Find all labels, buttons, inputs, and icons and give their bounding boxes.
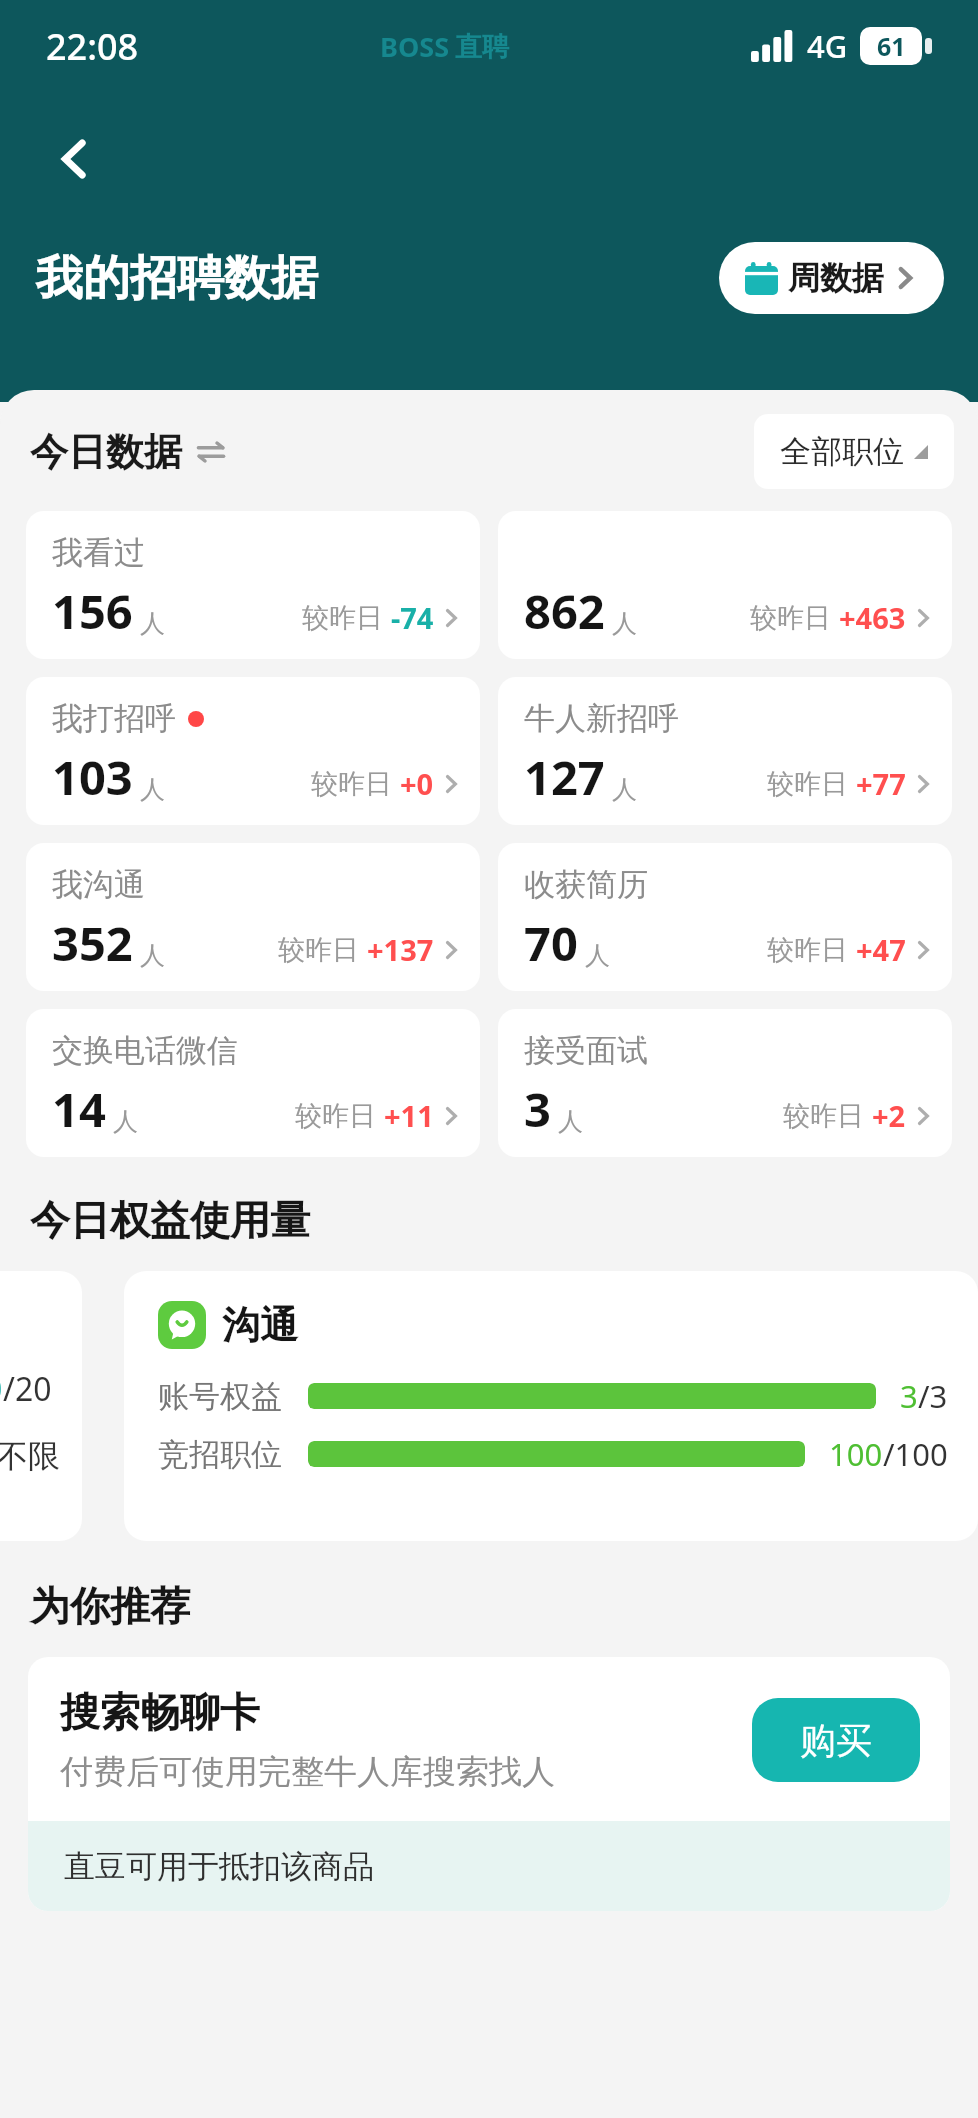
button[interactable]: 0 (0, 1271, 82, 1541)
staticText: 较昨日 (783, 1099, 864, 1133)
staticText: 较昨日 (302, 601, 383, 635)
button[interactable]: 周数据 (719, 242, 944, 314)
button[interactable]: 我看过 (26, 511, 480, 659)
staticText: 4G (807, 25, 848, 67)
button[interactable]: 862 (498, 511, 952, 659)
staticText: +11 (384, 1096, 434, 1135)
staticText: 61 (877, 29, 906, 63)
staticText: +2 (872, 1096, 906, 1135)
staticText: 竞招职位 (158, 1435, 282, 1474)
staticText: 我的招聘数据 (36, 249, 318, 308)
staticText: 14 (52, 1077, 106, 1141)
button[interactable]: 交换电话微信 (26, 1009, 480, 1157)
staticText: 862 (524, 579, 605, 643)
staticText: 3 (524, 1077, 551, 1141)
button[interactable]: 我打招呼 (26, 677, 480, 825)
button[interactable]: 接受面试 (498, 1009, 952, 1157)
staticText: 103 (52, 745, 133, 809)
button[interactable]: 牛人新招呼 (498, 677, 952, 825)
staticText: +137 (367, 930, 434, 969)
button[interactable]: 沟通 (124, 1271, 978, 1541)
staticText: 人 (612, 608, 637, 639)
staticText: 购买 (800, 1718, 872, 1763)
staticText: 人 (140, 608, 165, 639)
staticText: 0 (0, 1367, 3, 1411)
staticText: 牛人新招呼 (524, 699, 679, 738)
staticText: 人 (612, 774, 637, 805)
staticText: 人 (585, 940, 610, 971)
button[interactable]: 购买 (752, 1698, 920, 1782)
staticText: 交换电话微信 (52, 1031, 238, 1070)
staticText: /20 (3, 1367, 52, 1411)
staticText: 直豆可用于抵扣该商品 (64, 1847, 374, 1886)
staticText: 付费后可使用完整牛人库搜索找人 (60, 1751, 555, 1793)
staticText: 账号权益 (158, 1377, 282, 1416)
staticText: 127 (524, 745, 605, 809)
button[interactable]: Back (44, 128, 106, 190)
staticText: 我看过 (52, 533, 145, 572)
staticText: 人 (558, 1106, 583, 1137)
staticText: 人 (140, 940, 165, 971)
staticText: 352 (52, 911, 133, 975)
staticText: 直聘 (455, 30, 509, 64)
staticText: /3 (918, 1375, 948, 1417)
staticText: 较昨日 (767, 767, 848, 801)
staticText: 156 (52, 579, 133, 643)
staticText: +77 (856, 764, 906, 803)
staticText: 3 (900, 1375, 918, 1417)
button[interactable]: 我沟通 (26, 843, 480, 991)
button[interactable]: 收获简历 (498, 843, 952, 991)
staticText: 较昨日 (767, 933, 848, 967)
button[interactable]: 全部职位 (754, 414, 954, 489)
staticText: +47 (856, 930, 906, 969)
staticText: +463 (839, 598, 906, 637)
staticText: 今日数据 (30, 428, 182, 476)
staticText: 较昨日 (750, 601, 831, 635)
staticText: BOSS (380, 28, 450, 65)
button[interactable]: 今日数据 (30, 428, 226, 476)
staticText: 今日权益使用量 (30, 1195, 310, 1245)
staticText: 接受面试 (524, 1031, 648, 1070)
staticText: 周数据 (788, 258, 884, 298)
staticText: 我沟通 (52, 865, 145, 904)
staticText: 较昨日 (311, 767, 392, 801)
staticText: 较昨日 (295, 1099, 376, 1133)
staticText: 22:08 (46, 22, 139, 71)
staticText: 较昨日 (278, 933, 359, 967)
staticText: /不限 (0, 1433, 60, 1477)
staticText: 人 (140, 774, 165, 805)
staticText: +0 (400, 764, 434, 803)
staticText: 为你推荐 (30, 1581, 190, 1631)
staticText: 人 (113, 1106, 138, 1137)
staticText: 搜索畅聊卡 (60, 1687, 260, 1737)
staticText: 70 (524, 911, 578, 975)
staticText: 收获简历 (524, 865, 648, 904)
staticText: 100 (829, 1433, 883, 1475)
staticText: /100 (883, 1433, 948, 1475)
staticText: 沟通 (222, 1301, 298, 1349)
staticText: -74 (391, 598, 434, 637)
staticText: 全部职位 (780, 432, 904, 471)
button[interactable]: 搜索畅聊卡 (28, 1657, 950, 1911)
staticText: 我打招呼 (52, 699, 176, 738)
